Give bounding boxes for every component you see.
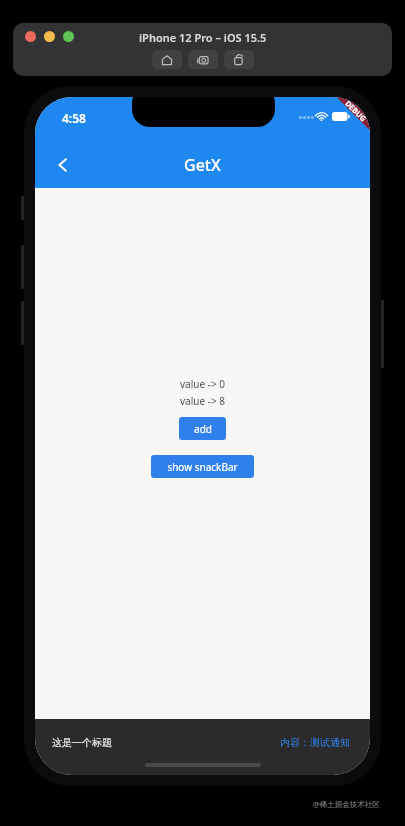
- staticText: add: [194, 422, 212, 436]
- button[interactable]: Home: [152, 50, 182, 69]
- button[interactable]: Back: [43, 145, 83, 185]
- staticText: DEBUG: [343, 98, 369, 124]
- button[interactable]: Minimize: [44, 31, 55, 42]
- button[interactable]: show snackBar: [151, 455, 254, 478]
- button[interactable]: add: [179, 417, 226, 440]
- staticText: 4:58: [62, 110, 86, 126]
- staticText: 这是一个标题: [52, 736, 112, 749]
- button[interactable]: Screenshot: [188, 50, 218, 69]
- button[interactable]: Close: [25, 31, 36, 42]
- button[interactable]: Maximize: [63, 31, 74, 42]
- staticText: value -> 0: [180, 377, 225, 391]
- staticText: show snackBar: [167, 460, 238, 474]
- button[interactable]: Record: [224, 50, 254, 69]
- staticText: value -> 8: [180, 394, 225, 408]
- staticText: iPhone 12 Pro – iOS 15.5: [139, 30, 267, 45]
- button[interactable]: 内容：测试通知: [280, 736, 350, 749]
- staticText: GetX: [184, 154, 221, 176]
- staticText: @稀土掘金技术社区: [313, 799, 380, 809]
